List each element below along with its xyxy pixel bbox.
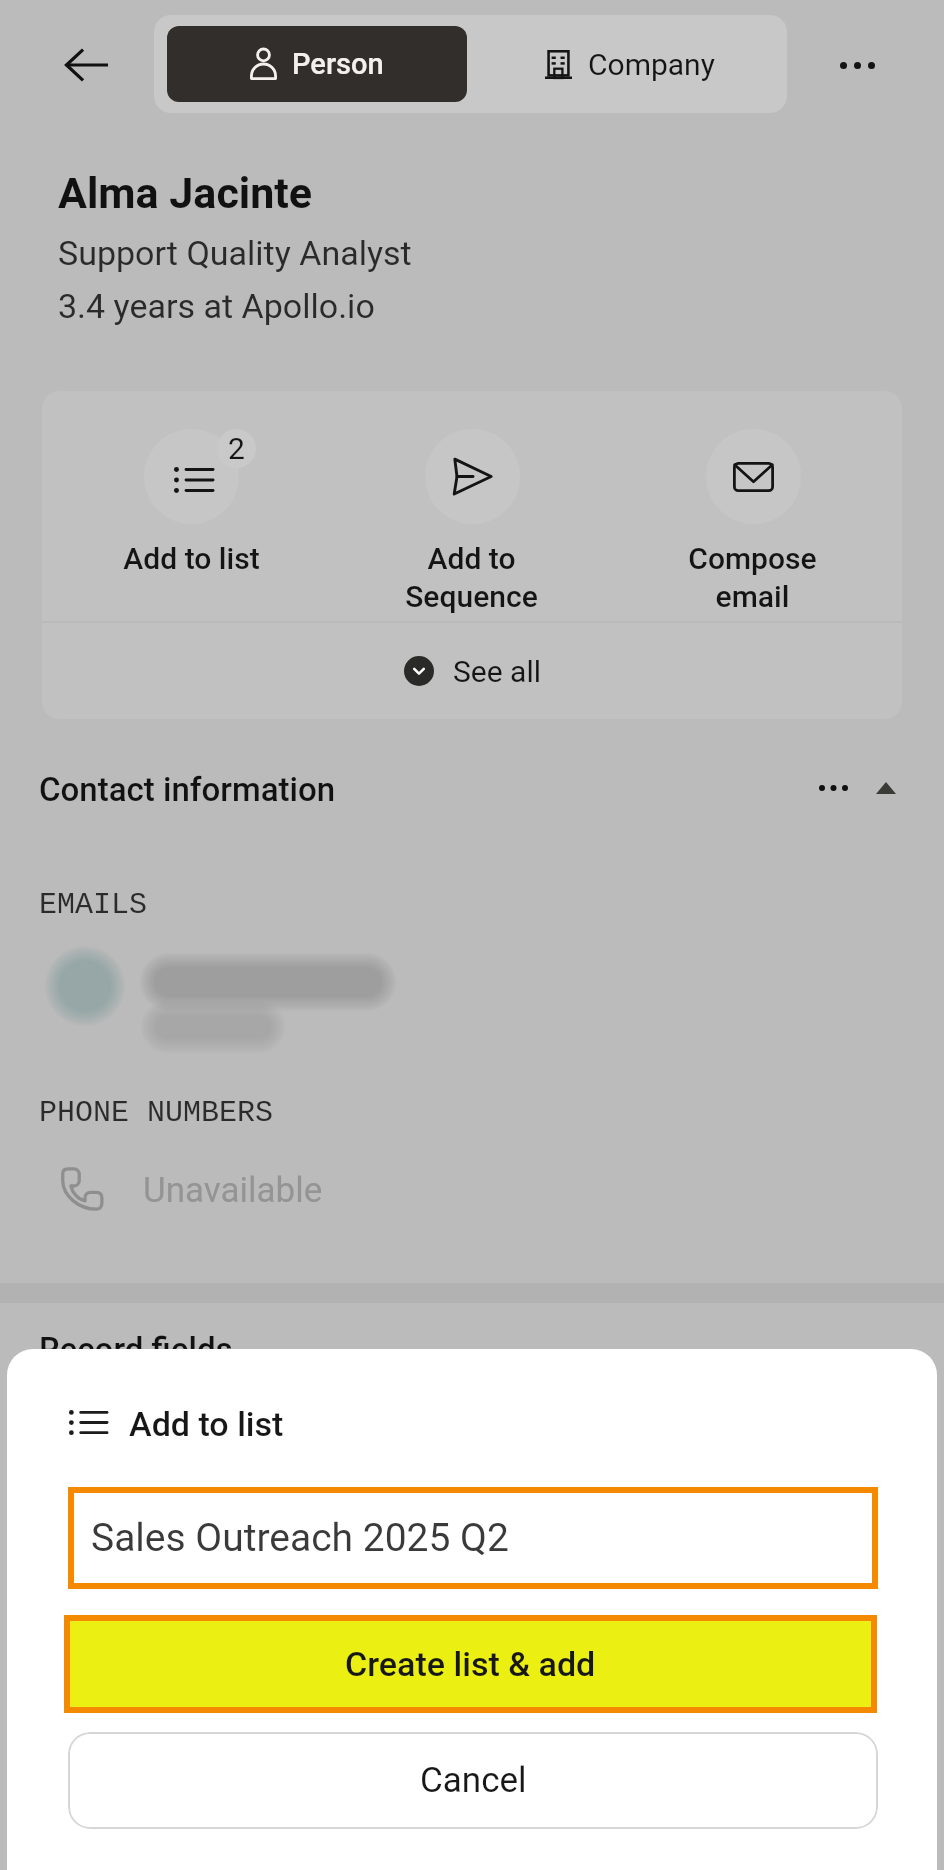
staticText: See all (453, 654, 541, 689)
button[interactable]: Person (167, 26, 467, 102)
staticText: Unavailable (143, 1170, 323, 1211)
staticText: PHONE NUMBERS (39, 1096, 274, 1130)
button[interactable]: Company (467, 26, 787, 102)
button[interactable]: Sales Outreach 2025 Q2 (74, 1493, 872, 1583)
staticText: Add to Sequence (405, 541, 538, 614)
staticText: EMAILS (39, 888, 148, 922)
staticText: Add to list (129, 1404, 284, 1444)
staticText: Cancel (420, 1760, 527, 1801)
staticText: Record fields (39, 1330, 233, 1369)
button[interactable]: Compose email (612, 428, 893, 614)
staticText: Add to list (123, 541, 260, 576)
button[interactable]: See all (42, 623, 902, 719)
staticText: Sales Outreach 2025 Q2 (91, 1515, 509, 1561)
button[interactable]: More options (817, 25, 897, 105)
button[interactable]: Cancel (68, 1732, 878, 1829)
staticText: Alma Jacinte (58, 168, 313, 218)
button[interactable]: Section options (801, 762, 866, 814)
staticText: Person (292, 47, 384, 81)
staticText: 2 (228, 431, 245, 466)
staticText: Contact information (39, 770, 336, 809)
staticText: Support Quality Analyst (58, 233, 412, 273)
button[interactable]: Add to Sequence (331, 428, 612, 614)
button[interactable]: Create list & add (70, 1621, 871, 1707)
staticText: Company (588, 47, 715, 82)
staticText: Create list & add (345, 1644, 596, 1684)
staticText: Compose email (688, 541, 817, 614)
button[interactable]: 2 (51, 428, 331, 576)
button[interactable]: Collapse section (860, 762, 912, 814)
staticText: 3.4 years at Apollo.io (58, 286, 375, 326)
button[interactable]: Back (46, 25, 126, 105)
